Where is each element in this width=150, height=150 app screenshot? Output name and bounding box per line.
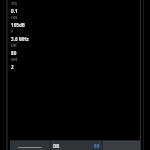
staticText: 3.6 MHz [11, 36, 29, 42]
staticText: 105dB [11, 22, 25, 28]
staticText: 80 [94, 143, 100, 149]
staticText: GN [11, 15, 18, 21]
staticText: 0.1 [11, 8, 18, 14]
button[interactable]: TIS [10, 1, 56, 70]
staticText: SRI [11, 57, 18, 63]
staticText: 80 [11, 50, 17, 56]
staticText: TIS [11, 1, 18, 7]
staticText: F [11, 29, 14, 35]
button[interactable]: DR [51, 141, 102, 150]
staticText: DR [11, 43, 17, 49]
staticText: DR [53, 143, 60, 149]
button[interactable]: Adjust gain [10, 141, 50, 150]
staticText: 2 [11, 64, 14, 70]
